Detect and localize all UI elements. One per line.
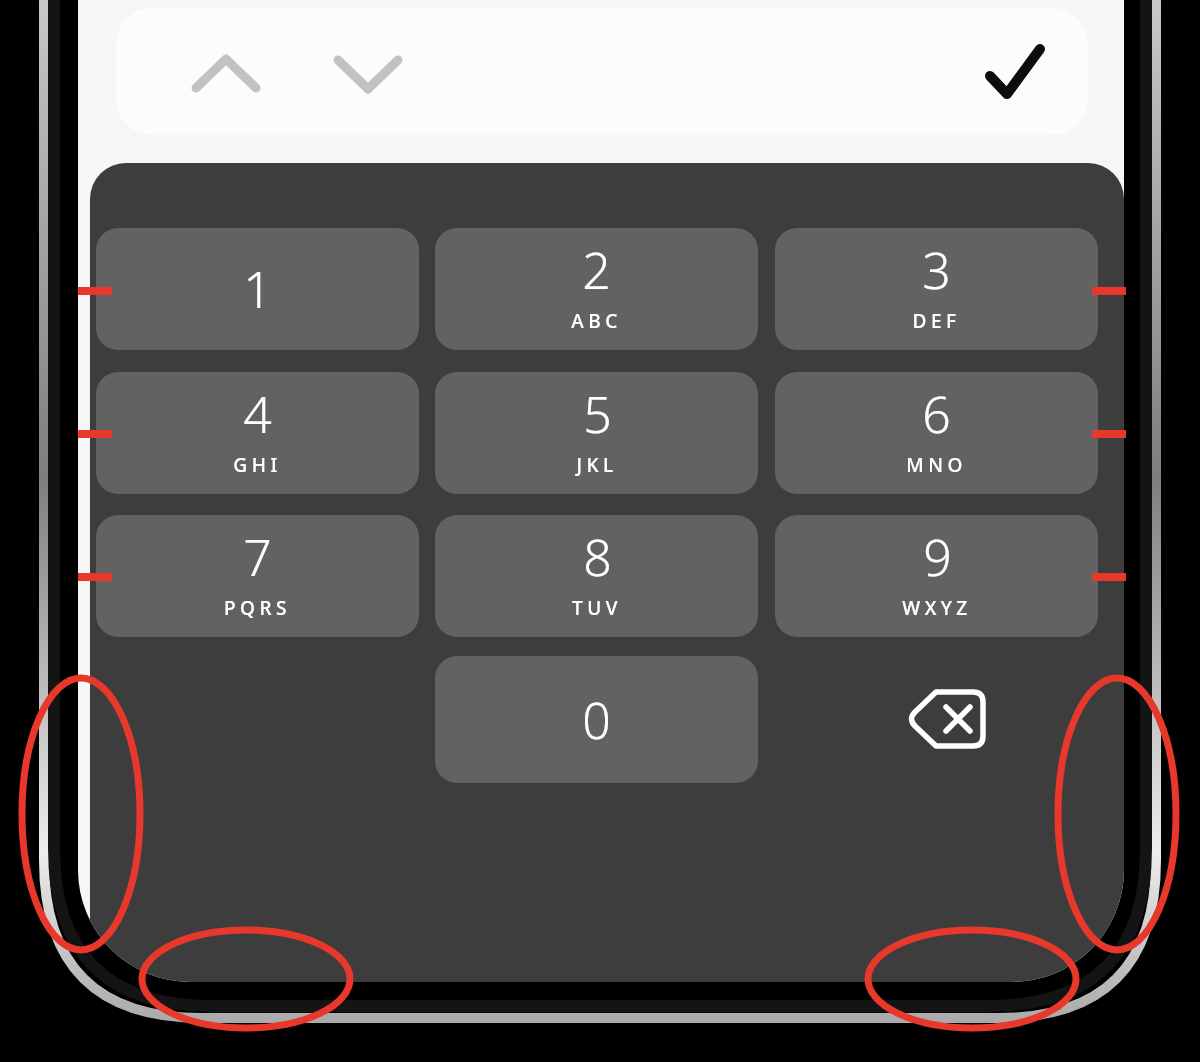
staticText: WXYZ — [902, 595, 972, 621]
staticText: 9 — [923, 523, 952, 591]
button[interactable]: 4 — [96, 372, 419, 494]
button[interactable]: Previous field — [188, 36, 264, 112]
button[interactable]: 3 — [775, 228, 1098, 350]
staticText: ABC — [571, 308, 622, 334]
staticText: 1 — [243, 255, 272, 323]
staticText: 6 — [922, 380, 951, 448]
staticText: JKL — [576, 452, 618, 478]
staticText: GHI — [233, 452, 282, 478]
button[interactable]: 9 — [775, 515, 1098, 637]
staticText: DEF — [912, 308, 961, 334]
staticText: 2 — [582, 236, 611, 304]
staticText: MNO — [906, 452, 967, 478]
staticText: PQRS — [224, 595, 291, 621]
staticText: 0 — [582, 686, 611, 754]
staticText: 4 — [243, 380, 272, 448]
staticText: 5 — [583, 380, 612, 448]
button[interactable]: Next field — [330, 36, 406, 112]
button[interactable]: 6 — [775, 372, 1098, 494]
staticText: 7 — [243, 523, 272, 591]
button[interactable]: 2 — [435, 228, 758, 350]
button[interactable]: 5 — [435, 372, 758, 494]
button[interactable]: 0 — [435, 656, 758, 783]
staticText: 3 — [922, 236, 951, 304]
button[interactable]: 8 — [435, 515, 758, 637]
button[interactable]: Done — [974, 34, 1054, 114]
staticText: 8 — [583, 523, 612, 591]
button[interactable]: 7 — [96, 515, 419, 637]
button[interactable]: Backspace — [876, 671, 1016, 767]
staticText: TUV — [572, 595, 622, 621]
button[interactable]: 1 — [96, 228, 419, 350]
